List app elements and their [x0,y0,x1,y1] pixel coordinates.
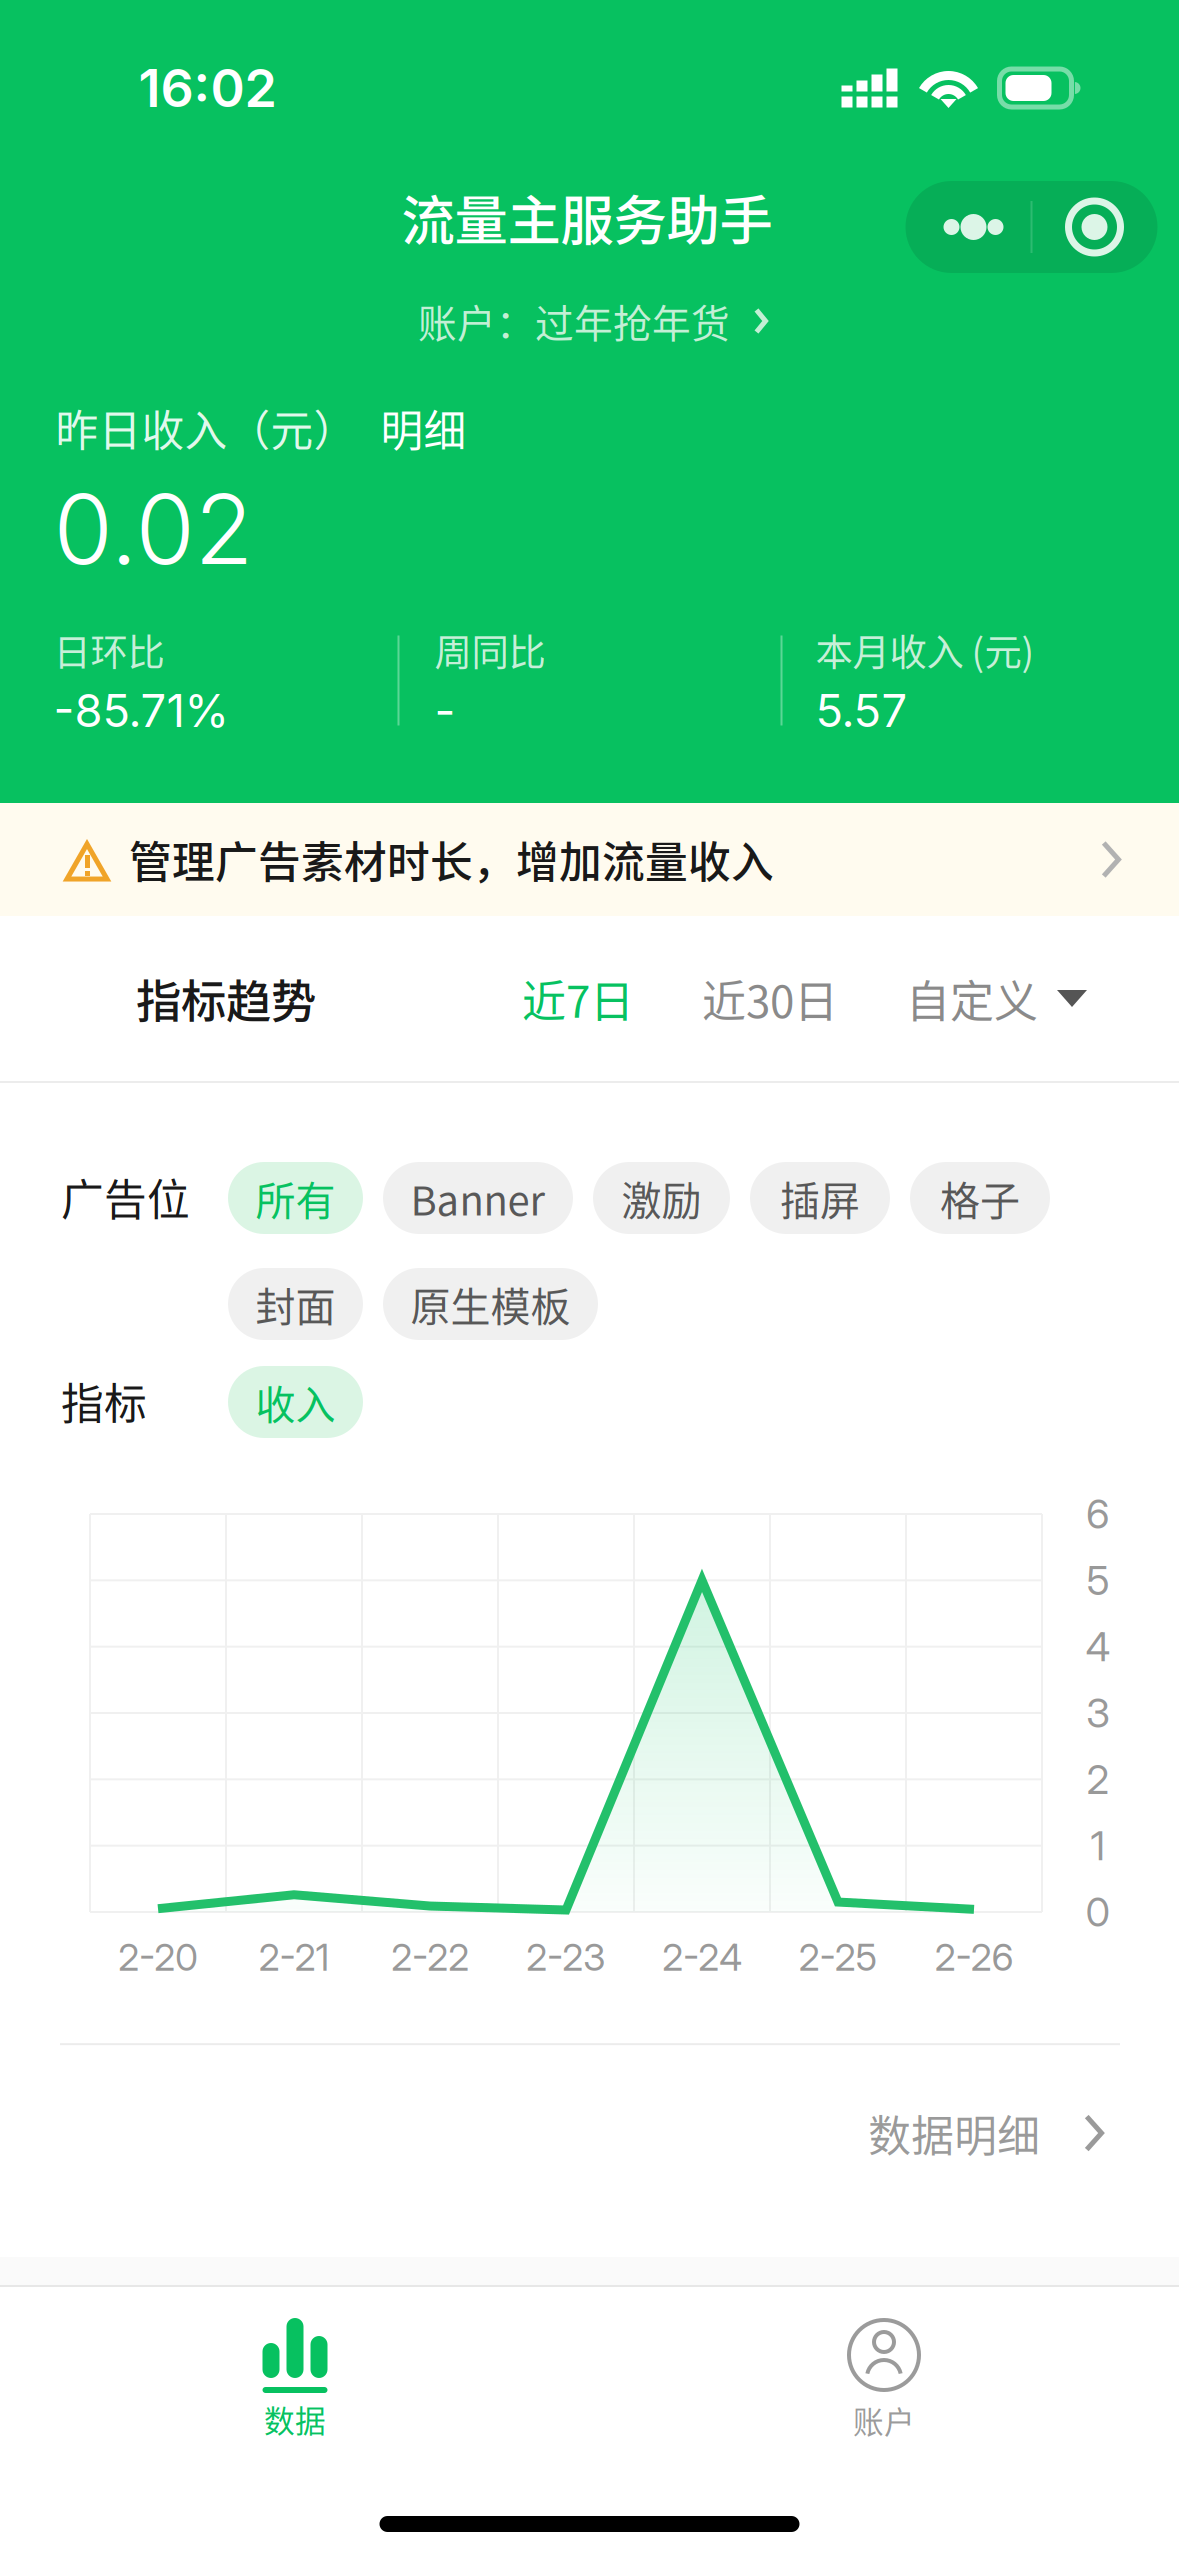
staticText: 数据 [264,2397,326,2441]
staticText: 昨日收入（元） [55,397,356,459]
staticText: 原生模板 [410,1275,570,1333]
staticText: 3 [1086,1689,1110,1737]
button[interactable]: 原生模板 [383,1268,598,1340]
staticText: 周同比 [434,623,545,677]
staticText: 0 [1085,1888,1110,1936]
staticText: 2-26 [934,1935,1013,1980]
staticText: 2-23 [526,1935,606,1980]
staticText: 近7日 [522,967,634,1030]
staticText: - [434,683,455,738]
staticText: 明细 [380,397,466,459]
staticText: 日环比 [53,623,164,677]
staticText: 激励 [621,1169,701,1227]
staticText: -85.71% [53,683,229,738]
staticText: 格子 [940,1169,1020,1227]
staticText: 1 [1090,1821,1105,1870]
button[interactable]: 数据明细 [868,2070,1179,2196]
staticText: 6 [1086,1490,1110,1538]
staticText: 插屏 [780,1169,860,1227]
staticText: 自定义 [906,967,1038,1030]
staticText: 数据明细 [868,2102,1040,2164]
staticText: 2-25 [798,1935,877,1980]
button[interactable]: 格子 [910,1162,1050,1234]
button[interactable]: 激励 [593,1162,730,1234]
staticText: 2-21 [258,1935,329,1980]
staticText: 封面 [255,1275,335,1333]
staticText: 流量主服务助手 [401,178,772,256]
button[interactable]: 近7日 [510,953,646,1044]
button[interactable]: 收入 [228,1366,363,1438]
button[interactable]: 账户：过年抢年货 [418,285,768,357]
button[interactable]: 管理广告素材时长，增加流量收入 [0,803,1179,916]
staticText: 广告位 [61,1166,190,1228]
button[interactable]: 插屏 [750,1162,890,1234]
button[interactable]: 账户 [589,2287,1178,2467]
staticText: 2 [1086,1755,1109,1803]
button[interactable]: Banner [383,1162,573,1234]
staticText: 2-20 [118,1935,198,1980]
button[interactable]: Close mini program [1032,181,1157,273]
staticText: 指标 [61,1370,147,1432]
staticText: 近30日 [702,967,838,1030]
button[interactable]: 所有 [228,1162,363,1234]
staticText: 2-24 [662,1935,742,1980]
staticText: 账户：过年抢年货 [418,293,730,349]
staticText: 收入 [255,1373,335,1431]
staticText: 2-22 [391,1935,469,1980]
staticText: 5.57 [815,683,907,738]
staticText: 管理广告素材时长，增加流量收入 [129,829,774,890]
button[interactable]: 自定义 [894,953,1099,1044]
staticText: 0.02 [53,471,253,587]
staticText: 4 [1085,1622,1110,1671]
button[interactable]: 封面 [228,1268,363,1340]
button[interactable]: 近30日 [690,953,850,1044]
staticText: Banner [410,1169,545,1227]
staticText: 账户 [853,2398,915,2442]
staticText: 16:02 [138,56,276,119]
button[interactable]: 明细 [356,391,466,465]
staticText: 指标趋势 [136,966,316,1031]
button[interactable]: 数据 [0,2287,589,2467]
button[interactable]: More [905,181,1030,273]
staticText: 5 [1086,1556,1109,1604]
staticText: 所有 [255,1169,335,1227]
staticText: 本月收入 (元) [815,623,1034,677]
